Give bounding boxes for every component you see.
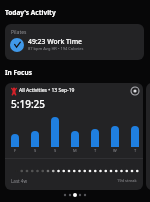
button[interactable]: Pilates — [5, 24, 144, 60]
staticText: All Activities • 13 Sep-19 — [19, 87, 75, 94]
staticText: Today's Activity — [5, 8, 56, 17]
staticText: Last 4w — [11, 178, 27, 184]
staticText: W — [113, 148, 117, 153]
staticText: T — [94, 148, 97, 153]
staticText: F — [14, 148, 17, 153]
staticText: In Focus — [5, 68, 32, 77]
staticText: 87 bpm Avg HR • 194 Calories — [28, 46, 84, 51]
staticText: S — [54, 148, 57, 153]
staticText: 5:19:25 — [11, 97, 46, 111]
button[interactable]: Info — [130, 86, 140, 96]
staticText: T — [134, 148, 137, 153]
staticText: S — [34, 148, 37, 153]
staticText: 19d streak — [117, 178, 137, 183]
staticText: M — [73, 148, 77, 153]
staticText: 49:23 Work Time — [28, 37, 83, 46]
staticText: Pilates — [11, 29, 27, 36]
